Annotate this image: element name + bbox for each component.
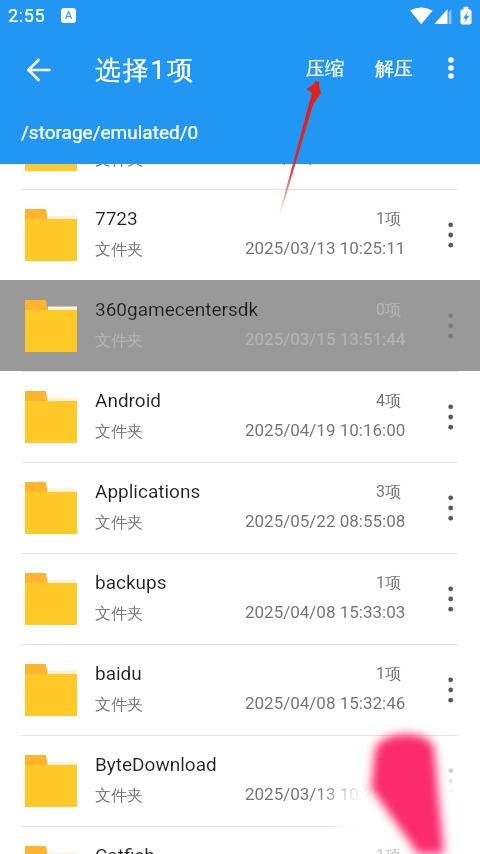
staticText: 1项 [376,664,401,684]
staticText: baidu [95,662,142,684]
staticText: ByteDownload [95,753,217,775]
button[interactable]: More options [428,394,474,440]
button[interactable]: 7723 [0,189,480,280]
staticText: 文件夹 [95,786,143,806]
button[interactable]: More options [428,576,474,622]
button[interactable]: 压缩 [296,50,354,88]
button[interactable]: More options [428,303,474,349]
staticText: 1项 [376,846,401,854]
staticText: 2025/04/08 15:32:46 [245,693,406,713]
staticText: 2025/04/08 15:33:03 [245,602,406,622]
staticText: 2025/03/13 10:25:11 [245,784,406,804]
button[interactable]: More options [428,485,474,531]
staticText: backups [95,571,167,593]
staticText: A [65,9,73,22]
staticText: 4项 [376,391,401,411]
staticText: 文件夹 [95,150,143,170]
button[interactable]: More options [428,667,474,713]
button[interactable]: Catfish [0,826,480,854]
button[interactable]: 解压 [365,50,423,88]
staticText: 1项 [376,209,401,229]
staticText: 文件夹 [95,422,143,442]
staticText: 文件夹 [95,331,143,351]
button[interactable]: 360gamecentersdk [0,280,480,371]
staticText: 压缩 [306,57,344,81]
staticText: 7723 [95,207,138,229]
staticText: Applications [95,480,201,502]
button[interactable]: 360Browser [0,99,480,190]
staticText: 2025/03/13 10:25:11 [245,238,406,258]
staticText: 360Browser [95,117,197,139]
button[interactable]: More options [428,122,474,168]
staticText: 文件夹 [95,695,143,715]
staticText: 2025/04/19 10:16:00 [245,420,406,440]
staticText: 2025/03/15 13:51:44 [245,329,406,349]
button[interactable]: More options [428,212,474,258]
button[interactable]: ByteDownload [0,735,480,826]
button[interactable]: Back [15,46,63,94]
button[interactable]: More options [428,758,474,804]
staticText: 2:55 [8,5,46,26]
staticText: 选择1项 [95,54,195,87]
button[interactable]: More options [428,45,474,91]
button[interactable]: Android [0,371,480,462]
staticText: 1项 [376,573,401,593]
staticText: /storage/emulated/0 [21,121,199,143]
button[interactable]: baidu [0,644,480,735]
staticText: 文件夹 [95,604,143,624]
staticText: 2025/05/22 08:55:08 [245,511,406,531]
button[interactable]: backups [0,553,480,644]
staticText: 0项 [376,300,401,320]
staticText: 360gamecentersdk [95,298,259,320]
staticText: 2025/03/12 09:14:02 [245,148,406,168]
staticText: 文件夹 [95,513,143,533]
staticText: Android [95,389,162,411]
button[interactable]: Applications [0,462,480,553]
staticText: 文件夹 [95,240,143,260]
staticText: 1项 [376,755,401,775]
staticText: 解压 [375,57,413,81]
staticText: 3项 [376,482,401,502]
button[interactable]: More options [428,849,474,854]
staticText: Catfish [95,844,155,854]
